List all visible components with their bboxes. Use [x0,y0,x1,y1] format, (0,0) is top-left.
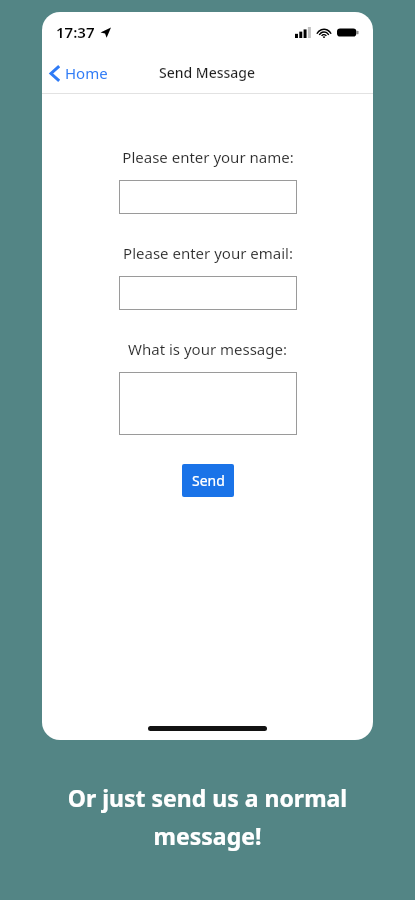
staticText: Please enter your email: [123,243,293,263]
staticText: What is your message: [128,339,287,359]
button[interactable]: Text field [119,276,297,310]
staticText: Please enter your name: [122,147,294,167]
button[interactable]: Text field [119,180,297,214]
staticText: Send [192,471,225,490]
staticText: Or just send us a normal message! [22,782,393,852]
staticText: 17:37 [56,22,95,42]
staticText: Home [65,63,108,83]
button[interactable]: Home [42,59,118,87]
staticText: Send Message [159,63,256,82]
button[interactable]: Send [182,464,234,497]
button[interactable]: Text field [119,372,297,435]
